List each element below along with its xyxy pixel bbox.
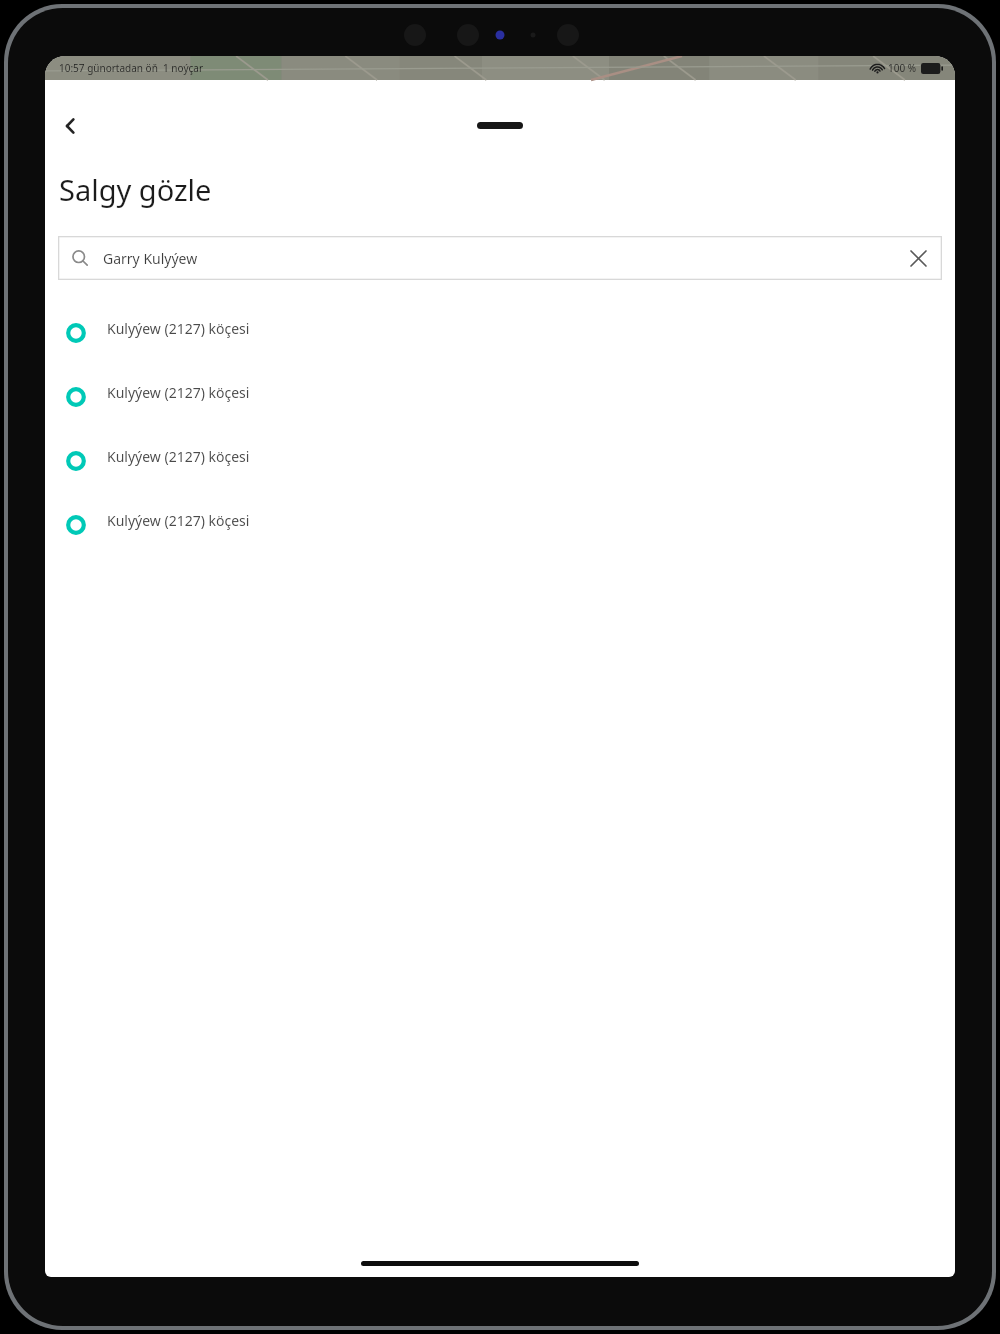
staticText: Kulyýew (2127) köçesi	[107, 511, 250, 530]
button[interactable]: Kulyýew (2127) köçesi	[45, 429, 955, 493]
staticText: Salgy gözle	[59, 170, 212, 209]
staticText: 10:57 günortadan öň 1 noýçar	[59, 61, 204, 75]
button[interactable]: Kulyýew (2127) köçesi	[45, 493, 955, 557]
button[interactable]: Kulyýew (2127) köçesi	[45, 365, 955, 429]
button[interactable]: Garry Kulyýew	[58, 236, 942, 280]
staticText: Kulyýew (2127) köçesi	[107, 383, 250, 402]
staticText: Kulyýew (2127) köçesi	[107, 319, 250, 338]
button[interactable]: Back	[49, 104, 93, 148]
staticText: 100 %	[888, 61, 917, 75]
button[interactable]: Clear	[902, 242, 934, 274]
staticText: Garry Kulyýew	[103, 249, 198, 268]
button[interactable]: Kulyýew (2127) köçesi	[45, 301, 955, 365]
staticText: Kulyýew (2127) köçesi	[107, 447, 250, 466]
